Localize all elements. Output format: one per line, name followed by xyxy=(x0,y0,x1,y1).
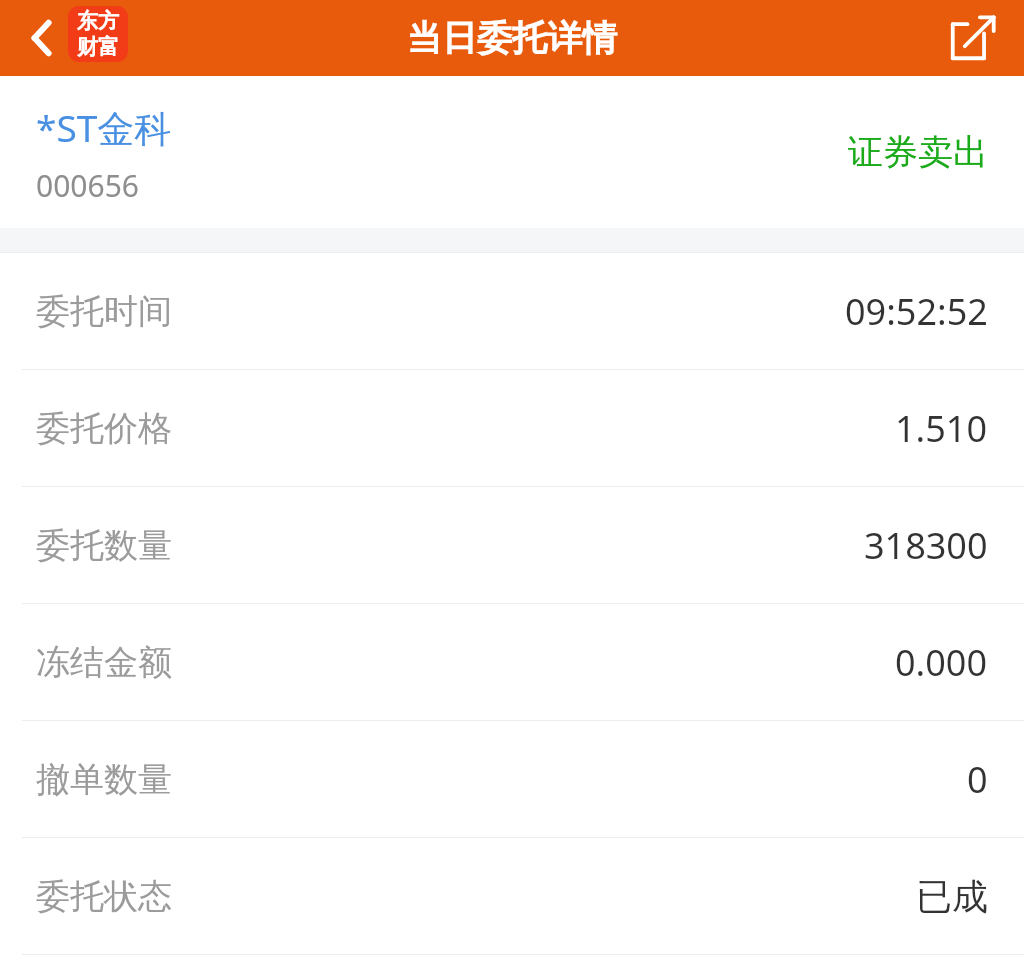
button[interactable]: 委托时间 xyxy=(0,253,1024,369)
staticText: 0.000 xyxy=(895,638,988,687)
button[interactable]: 东方财富 xyxy=(68,6,128,62)
staticText: 318300 xyxy=(864,521,988,570)
button[interactable]: 委托数量 xyxy=(0,487,1024,603)
button[interactable]: 返回 xyxy=(14,10,70,66)
staticText: 委托状态 xyxy=(36,875,172,918)
staticText: 委托时间 xyxy=(36,290,172,333)
button[interactable]: 委托价格 xyxy=(0,370,1024,486)
staticText: 冻结金额 xyxy=(36,641,172,684)
staticText: *ST金科 xyxy=(36,102,172,153)
staticText: 东方 xyxy=(77,8,119,34)
staticText: 当日委托详情 xyxy=(407,16,617,60)
staticText: 0 xyxy=(967,755,988,804)
staticText: 已成 xyxy=(916,874,988,919)
staticText: 委托价格 xyxy=(36,407,172,450)
button[interactable]: 冻结金额 xyxy=(0,604,1024,720)
staticText: 撤单数量 xyxy=(36,758,172,801)
staticText: 09:52:52 xyxy=(845,287,988,336)
button[interactable]: 撤单数量 xyxy=(0,721,1024,837)
staticText: 委托数量 xyxy=(36,524,172,567)
staticText: 财富 xyxy=(77,34,119,60)
button[interactable]: *ST金科 xyxy=(0,76,1024,228)
staticText: 证券卖出 xyxy=(848,130,988,174)
staticText: 1.510 xyxy=(895,404,988,453)
button[interactable]: 委托状态 xyxy=(0,838,1024,954)
staticText: 000656 xyxy=(36,165,139,206)
button[interactable]: 分享 xyxy=(942,7,1004,69)
